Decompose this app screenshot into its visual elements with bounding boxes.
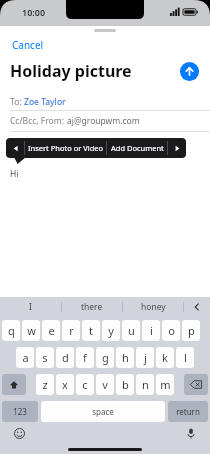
button[interactable]: Send	[180, 62, 199, 81]
staticText: 10:00	[22, 6, 46, 18]
staticText: Holiday picture	[10, 60, 180, 82]
button[interactable]: p	[182, 320, 200, 341]
button[interactable]: Previous	[6, 138, 24, 158]
staticText: aj@groupwm.com	[67, 115, 140, 127]
staticText: k	[162, 350, 168, 365]
button[interactable]: d	[56, 347, 74, 368]
staticText: Zoe Taylor	[24, 96, 66, 108]
staticText: I	[29, 301, 32, 313]
button[interactable]: Shift	[2, 374, 26, 395]
button[interactable]: r	[62, 320, 80, 341]
button[interactable]: Insert Photo or Video	[25, 138, 106, 158]
staticText: Insert Photo or Video	[28, 143, 104, 153]
staticText: r	[69, 323, 74, 338]
button[interactable]: v	[96, 374, 114, 395]
staticText: m	[160, 377, 171, 392]
staticText: n	[142, 377, 149, 392]
button[interactable]: Backspace	[184, 374, 208, 395]
staticText: l	[184, 350, 187, 365]
button[interactable]: g	[96, 347, 114, 368]
staticText: a	[22, 350, 29, 365]
button[interactable]: Cc/Bcc, From:	[0, 111, 210, 131]
button[interactable]: space	[41, 401, 165, 422]
button[interactable]: honey	[123, 297, 183, 317]
button[interactable]: k	[156, 347, 174, 368]
staticText: To:	[10, 96, 24, 108]
staticText: i	[150, 323, 153, 338]
staticText: j	[144, 350, 147, 365]
button[interactable]: y	[102, 320, 120, 341]
staticText: Cc/Bcc, From:	[10, 115, 67, 127]
button[interactable]: m	[156, 374, 174, 395]
staticText: b	[122, 377, 129, 392]
staticText: Hi	[10, 168, 19, 180]
staticText: return	[176, 406, 200, 417]
staticText: u	[128, 323, 135, 338]
button[interactable]: u	[122, 320, 140, 341]
staticText: c	[82, 377, 88, 392]
button[interactable]: return	[168, 401, 208, 422]
button[interactable]: x	[56, 374, 74, 395]
button[interactable]: Add Document	[107, 138, 167, 158]
staticText: f	[83, 350, 87, 365]
button[interactable]: o	[162, 320, 180, 341]
staticText: e	[48, 323, 55, 338]
button[interactable]: 123	[2, 401, 38, 422]
button[interactable]: h	[116, 347, 134, 368]
button[interactable]: I	[0, 297, 61, 317]
staticText: honey	[141, 301, 166, 313]
staticText: x	[62, 377, 68, 392]
staticText: d	[62, 350, 69, 365]
staticText: 123	[13, 406, 27, 417]
staticText: s	[42, 350, 48, 365]
button[interactable]: j	[136, 347, 154, 368]
button[interactable]: i	[142, 320, 160, 341]
staticText: o	[168, 323, 175, 338]
staticText: Add Document	[111, 143, 164, 153]
staticText: w	[27, 323, 36, 338]
button[interactable]: e	[42, 320, 60, 341]
button[interactable]: q	[2, 320, 20, 341]
staticText: g	[102, 350, 109, 365]
staticText: y	[108, 323, 114, 338]
button[interactable]: a	[16, 347, 34, 368]
button[interactable]: n	[136, 374, 154, 395]
button[interactable]: Emoji	[12, 426, 26, 440]
button[interactable]: c	[76, 374, 94, 395]
staticText: Cancel	[12, 38, 44, 52]
button[interactable]: t	[82, 320, 100, 341]
button[interactable]: Dictation	[184, 426, 198, 440]
staticText: v	[102, 377, 108, 392]
button[interactable]: b	[116, 374, 134, 395]
button[interactable]: z	[36, 374, 54, 395]
staticText: space	[92, 406, 114, 417]
staticText: there	[81, 301, 103, 313]
staticText: h	[122, 350, 129, 365]
button[interactable]: l	[176, 347, 194, 368]
staticText: z	[42, 377, 48, 392]
button[interactable]: w	[22, 320, 40, 341]
staticText: p	[188, 323, 195, 338]
button[interactable]: To:	[0, 94, 210, 110]
staticText: q	[8, 323, 15, 338]
button[interactable]: there	[62, 297, 122, 317]
button[interactable]: Collapse	[184, 297, 210, 317]
button[interactable]: Cancel	[10, 36, 46, 54]
button[interactable]: Next	[168, 138, 186, 158]
button[interactable]: f	[76, 347, 94, 368]
button[interactable]: s	[36, 347, 54, 368]
staticText: t	[89, 323, 93, 338]
